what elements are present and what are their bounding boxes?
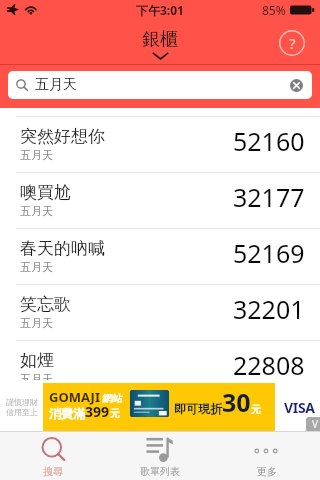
staticText: 五月天 xyxy=(20,372,53,386)
button[interactable]: 五月天 xyxy=(8,71,312,99)
button[interactable]: 如煙 xyxy=(0,340,320,396)
staticText: 元 xyxy=(251,403,261,416)
staticText: 信用至上 xyxy=(6,407,38,417)
staticText: 22809 xyxy=(233,394,305,428)
staticText: 消費滿 xyxy=(49,406,85,421)
staticText: 32177 xyxy=(233,180,305,214)
button[interactable]: Help xyxy=(279,30,305,56)
staticText: 春天的吶喊 xyxy=(20,238,105,259)
staticText: 32201 xyxy=(233,292,305,326)
staticText: 如煙 xyxy=(20,350,54,371)
staticText: VISA xyxy=(284,398,315,417)
staticText: 搜尋 xyxy=(43,465,63,478)
button[interactable]: Search xyxy=(0,432,106,480)
staticText: 399 xyxy=(85,402,110,421)
button[interactable]: Playlists xyxy=(106,432,213,480)
staticText: 五月天 xyxy=(20,260,53,274)
staticText: V xyxy=(312,417,318,431)
button[interactable]: 謹慎理財 xyxy=(0,380,320,431)
staticText: 30 xyxy=(222,385,251,419)
staticText: 銀櫃 xyxy=(142,28,178,51)
staticText: GOMAJI xyxy=(49,388,100,406)
staticText: 網站 xyxy=(100,391,123,405)
staticText: 即可現折 xyxy=(174,401,222,416)
button[interactable]: More xyxy=(213,432,320,480)
button[interactable]: 噢買尬 xyxy=(0,172,320,228)
staticText: 下午3:01 xyxy=(136,2,184,18)
button[interactable]: 笑忘歌 xyxy=(0,284,320,340)
button[interactable]: 突然好想你 xyxy=(0,116,320,172)
staticText: 謹慎理財 xyxy=(6,397,38,407)
staticText: 憨人 xyxy=(20,395,54,416)
button[interactable]: Ad info xyxy=(306,417,320,431)
staticText: 85% xyxy=(262,2,286,18)
button[interactable]: 春天的吶喊 xyxy=(0,228,320,284)
staticText: 元 xyxy=(110,407,120,420)
staticText: 五月天 xyxy=(35,76,77,94)
staticText: 噢買尬 xyxy=(20,182,71,203)
staticText: 五月天 xyxy=(20,417,53,431)
staticText: 22808 xyxy=(233,348,305,382)
staticText: ? xyxy=(289,33,296,53)
button[interactable]: 憨人 xyxy=(0,396,320,431)
button[interactable]: Clear search xyxy=(290,79,303,92)
staticText: 突然好想你 xyxy=(20,126,105,147)
button[interactable]: 銀櫃 xyxy=(130,20,190,62)
staticText: 歌單列表 xyxy=(140,465,180,478)
staticText: 五月天 xyxy=(20,148,53,162)
staticText: 更多 xyxy=(257,465,277,478)
staticText: 52169 xyxy=(233,236,305,270)
staticText: 52160 xyxy=(233,124,305,158)
staticText: 五月天 xyxy=(20,204,53,218)
staticText: 笑忘歌 xyxy=(20,294,71,315)
staticText: 五月天 xyxy=(20,316,53,330)
